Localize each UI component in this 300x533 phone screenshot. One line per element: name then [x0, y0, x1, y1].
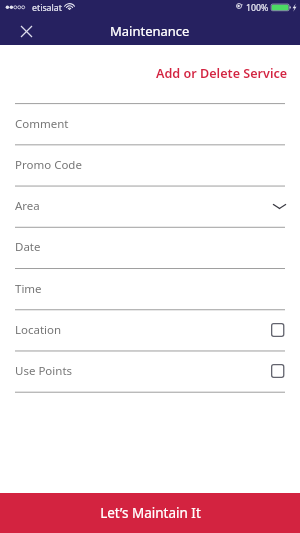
button[interactable]: Add or Delete Service	[148, 57, 296, 90]
staticText: Use Points	[15, 363, 73, 379]
button[interactable]: Comment	[0, 104, 300, 145]
staticText: 100%	[246, 2, 269, 14]
staticText: Comment	[15, 116, 69, 132]
staticText: Time	[15, 281, 42, 297]
button[interactable]: Date	[0, 227, 300, 268]
staticText: Date	[15, 239, 41, 255]
button[interactable]: Use Points	[0, 351, 300, 392]
button[interactable]: Promo Code	[0, 145, 300, 186]
staticText: Promo Code	[15, 157, 82, 173]
button[interactable]: Location	[0, 310, 300, 351]
other: Location checkbox	[271, 323, 285, 337]
staticText: Add or Delete Service	[156, 65, 288, 82]
staticText: etisalat	[32, 2, 62, 14]
staticText: Let’s Maintain It	[100, 504, 201, 522]
staticText: Maintenance	[110, 22, 190, 40]
button[interactable]: Close	[13, 18, 39, 44]
staticText: Location	[15, 322, 62, 338]
other: Expand area dropdown	[273, 204, 286, 209]
other: Use Points checkbox	[271, 364, 285, 378]
button[interactable]: Let’s Maintain It	[0, 493, 300, 533]
button[interactable]: Time	[0, 269, 300, 310]
button[interactable]: Area	[0, 186, 300, 227]
staticText: Area	[15, 198, 40, 214]
